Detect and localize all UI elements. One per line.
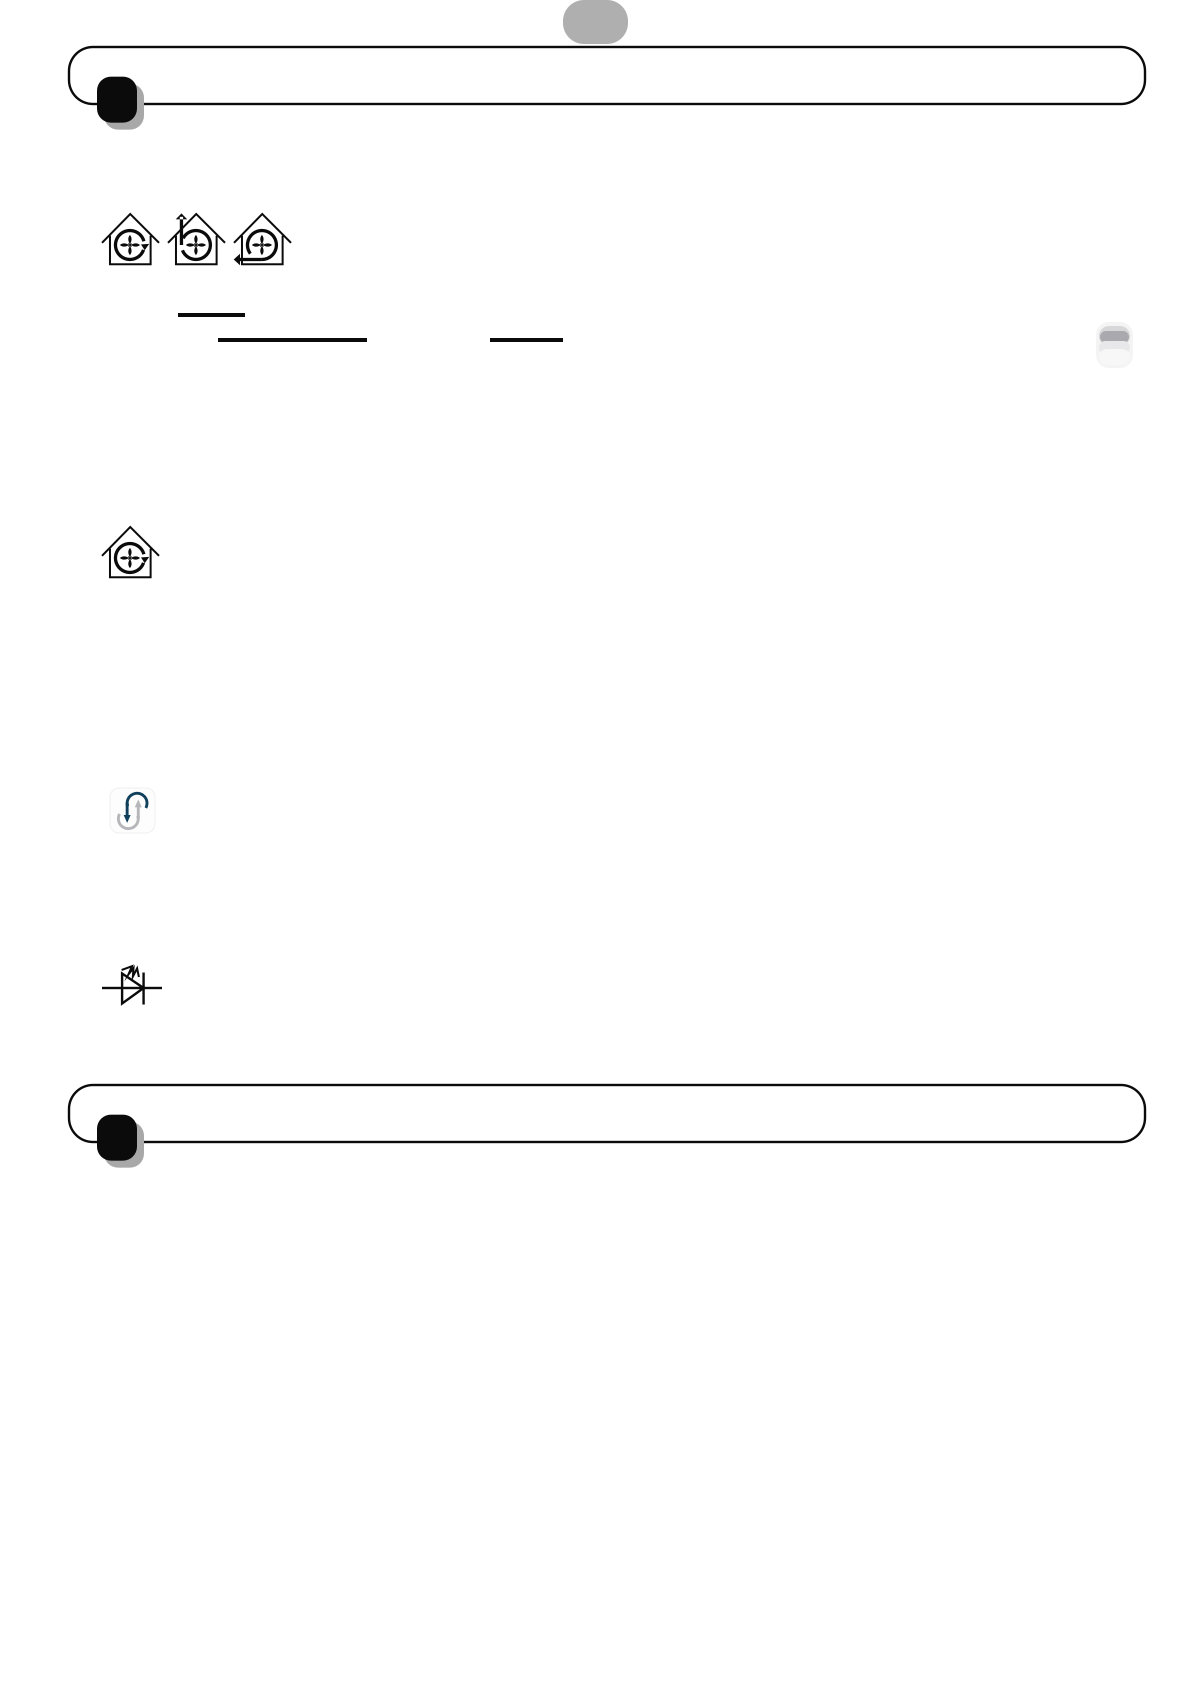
button[interactable]: Back home bbox=[234, 214, 291, 265]
button[interactable]: Upload bbox=[168, 214, 225, 265]
button[interactable]: Account bbox=[0, 47, 1191, 104]
button[interactable]: Play bbox=[102, 966, 162, 1004]
button[interactable]: Sync bbox=[110, 788, 155, 833]
button[interactable]: Home bbox=[102, 527, 159, 578]
button[interactable]: Compose bbox=[0, 1085, 1191, 1142]
button[interactable]: Home bbox=[102, 214, 159, 265]
